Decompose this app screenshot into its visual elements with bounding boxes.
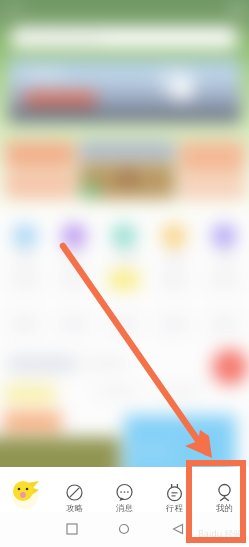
button[interactable] [5, 141, 75, 168]
button[interactable]: 攻略 [49, 467, 99, 512]
button[interactable] [79, 141, 175, 160]
staticText: 我的 [216, 503, 233, 512]
button[interactable]: 行程 [149, 467, 199, 512]
staticText: 攻略 [66, 503, 83, 512]
staticText: Baidu 经验 [198, 527, 243, 539]
button[interactable] [99, 315, 149, 333]
staticText: 火车票 [113, 253, 136, 262]
button[interactable]: 酒店 [49, 224, 99, 262]
staticText: 搜索目的地/景点/酒店 [24, 32, 102, 43]
button[interactable] [0, 437, 120, 467]
button[interactable]: 门票 [199, 224, 249, 262]
button[interactable]: Back [165, 516, 191, 542]
button[interactable]: 火车票 [99, 224, 149, 262]
button[interactable] [179, 178, 245, 199]
button[interactable]: 客服 [212, 349, 248, 385]
button[interactable] [5, 172, 75, 199]
button[interactable] [79, 163, 175, 199]
button[interactable]: Home [111, 516, 137, 542]
button[interactable]: 消息 [99, 467, 149, 512]
staticText: 机票 [17, 253, 32, 262]
button[interactable]: 限时特惠 [124, 415, 236, 467]
staticText: 行程 [166, 503, 183, 512]
button[interactable] [99, 271, 149, 289]
button[interactable]: 搜索目的地/景点/酒店 [10, 27, 239, 48]
staticText: 门票 [217, 253, 232, 262]
button[interactable] [179, 141, 245, 174]
staticText: 酒店 [67, 253, 82, 262]
staticText: 消息 [116, 503, 133, 512]
button[interactable]: 机票 [0, 224, 49, 262]
button[interactable]: Recents [59, 516, 85, 542]
button[interactable]: 我的 [199, 467, 249, 512]
button[interactable] [49, 271, 99, 289]
staticText: 旅游 [167, 253, 182, 262]
button[interactable]: 特价机票 [8, 59, 241, 123]
button[interactable]: 旅游 [149, 224, 199, 262]
button[interactable]: 首页 [0, 467, 49, 512]
